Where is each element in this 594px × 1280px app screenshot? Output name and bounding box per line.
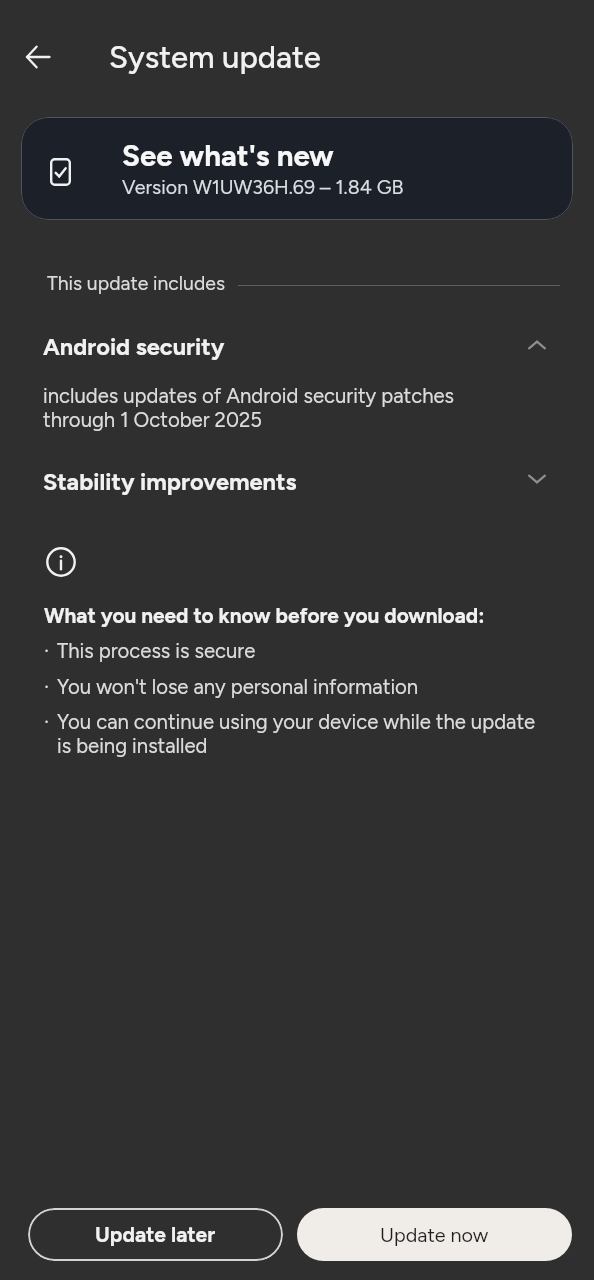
staticText: Android security bbox=[43, 333, 225, 361]
staticText: You can continue using your device while… bbox=[57, 710, 547, 758]
staticText: You won't lose any personal information bbox=[57, 675, 419, 699]
staticText: This process is secure bbox=[57, 639, 256, 663]
staticText: · bbox=[44, 710, 50, 734]
button[interactable]: See what's new bbox=[21, 117, 573, 220]
staticText: · bbox=[44, 675, 50, 699]
button[interactable]: Android security bbox=[0, 325, 594, 365]
staticText: · bbox=[44, 639, 50, 663]
button[interactable]: Stability improvements bbox=[0, 459, 594, 499]
staticText: Version W1UW36H.69 – 1.84 GB bbox=[122, 175, 404, 199]
staticText: Update now bbox=[380, 1223, 489, 1247]
staticText: Update later bbox=[95, 1222, 216, 1247]
staticText: This update includes bbox=[47, 272, 225, 295]
button[interactable]: Update later bbox=[28, 1208, 283, 1261]
staticText: includes updates of Android security pat… bbox=[43, 384, 493, 432]
staticText: See what's new bbox=[122, 138, 334, 173]
staticText: Stability improvements bbox=[43, 468, 297, 496]
staticText: System update bbox=[109, 39, 321, 76]
staticText: What you need to know before you downloa… bbox=[44, 603, 485, 628]
button[interactable]: Update now bbox=[297, 1208, 572, 1261]
button[interactable]: Back bbox=[14, 33, 62, 81]
